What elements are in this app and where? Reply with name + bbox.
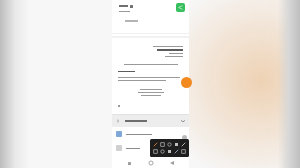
button[interactable]: Tool 2 bbox=[160, 142, 165, 147]
button[interactable]: File attachment bbox=[112, 141, 189, 155]
button[interactable]: Back bbox=[167, 158, 177, 168]
button[interactable]: Home bbox=[146, 158, 156, 168]
button[interactable] bbox=[112, 115, 189, 126]
button[interactable]: Recents bbox=[124, 158, 134, 168]
button[interactable]: Edit bbox=[181, 77, 192, 88]
button[interactable]: Send bbox=[176, 3, 185, 12]
button[interactable]: Tool 9 bbox=[174, 149, 179, 154]
button[interactable]: Tool 8 bbox=[167, 149, 172, 154]
button[interactable]: Tool 10 bbox=[181, 149, 186, 154]
button[interactable]: Tool 1 bbox=[153, 142, 158, 147]
button[interactable]: Tool 3 bbox=[167, 142, 172, 147]
button[interactable]: Move palette bbox=[182, 135, 187, 140]
button[interactable]: Tool 4 bbox=[174, 142, 179, 147]
button[interactable]: Tool 5 bbox=[181, 142, 186, 147]
button[interactable]: Tool 7 bbox=[160, 149, 165, 154]
button[interactable]: Image attachment bbox=[112, 127, 189, 141]
button[interactable]: Tool 6 bbox=[153, 149, 158, 154]
